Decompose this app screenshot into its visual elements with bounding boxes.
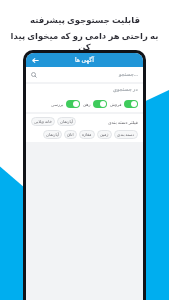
staticText: مغازه [82,132,92,137]
staticText: آگهی ها [75,56,94,64]
button[interactable]: رهن [83,100,107,108]
staticText: آپارتمان [60,119,73,124]
staticText: در جستجوی [113,86,138,93]
button[interactable]: فروش [110,100,138,108]
staticText: فروش [110,102,122,107]
staticText: اتاق [67,132,74,137]
button[interactable]: بررسی [51,100,80,108]
staticText: زمین [100,132,109,137]
staticText: به راحتی هر دامی رو که میخوای پیدا کن [8,30,161,52]
button[interactable]: دسته بندی [114,130,138,139]
button[interactable]: زمین [97,130,112,139]
button[interactable]: آپارتمان [43,130,62,139]
staticText: رهن [83,102,91,107]
staticText: دسته بندی [117,132,135,137]
staticText: جستجو... [119,71,138,78]
staticText: خانه ویلایی [34,119,52,124]
staticText: قابلیت جستوجوی پیشرفته [30,14,140,26]
button[interactable]: Search [26,67,143,82]
button[interactable]: آپارتمان [57,117,76,126]
button[interactable]: Back [30,55,40,65]
staticText: فیلتر دسته بندی [108,119,138,125]
staticText: بررسی [51,102,64,107]
button[interactable]: مغازه [79,130,95,139]
staticText: آپارتمان [46,132,59,137]
other: Search [31,72,37,78]
button[interactable]: اتاق [64,130,77,139]
button[interactable]: خانه ویلایی [31,117,55,126]
